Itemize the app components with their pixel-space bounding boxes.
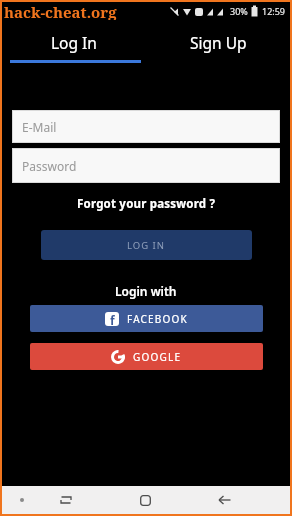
button[interactable]: GOOGLE [30, 343, 263, 370]
button[interactable]: f [30, 305, 263, 332]
staticText: GOOGLE [133, 350, 182, 364]
staticText: Sign Up [190, 32, 247, 53]
button[interactable] [20, 498, 24, 502]
staticText: FACEBOOK [127, 312, 188, 326]
button[interactable]: Sign Up [146, 20, 290, 64]
button[interactable] [133, 488, 157, 512]
button[interactable]: E-Mail [12, 110, 280, 143]
staticText: 12:59 [262, 5, 286, 17]
staticText: 30% [230, 5, 248, 17]
staticText: Forgot your password ? [77, 196, 216, 212]
staticText: E-Mail [22, 119, 57, 135]
button[interactable]: Forgot your password ? [2, 196, 290, 212]
button[interactable] [212, 488, 236, 512]
staticText: Login with [115, 283, 177, 299]
button[interactable]: Log In [2, 20, 146, 64]
staticText: hack-cheat.org [4, 2, 117, 20]
staticText: f [110, 312, 115, 326]
button[interactable]: LOG IN [41, 230, 252, 260]
staticText: LOG IN [127, 239, 166, 252]
button[interactable] [54, 488, 78, 512]
staticText: Password [22, 158, 77, 174]
button[interactable]: Password [12, 148, 280, 183]
staticText: Log In [51, 32, 97, 53]
